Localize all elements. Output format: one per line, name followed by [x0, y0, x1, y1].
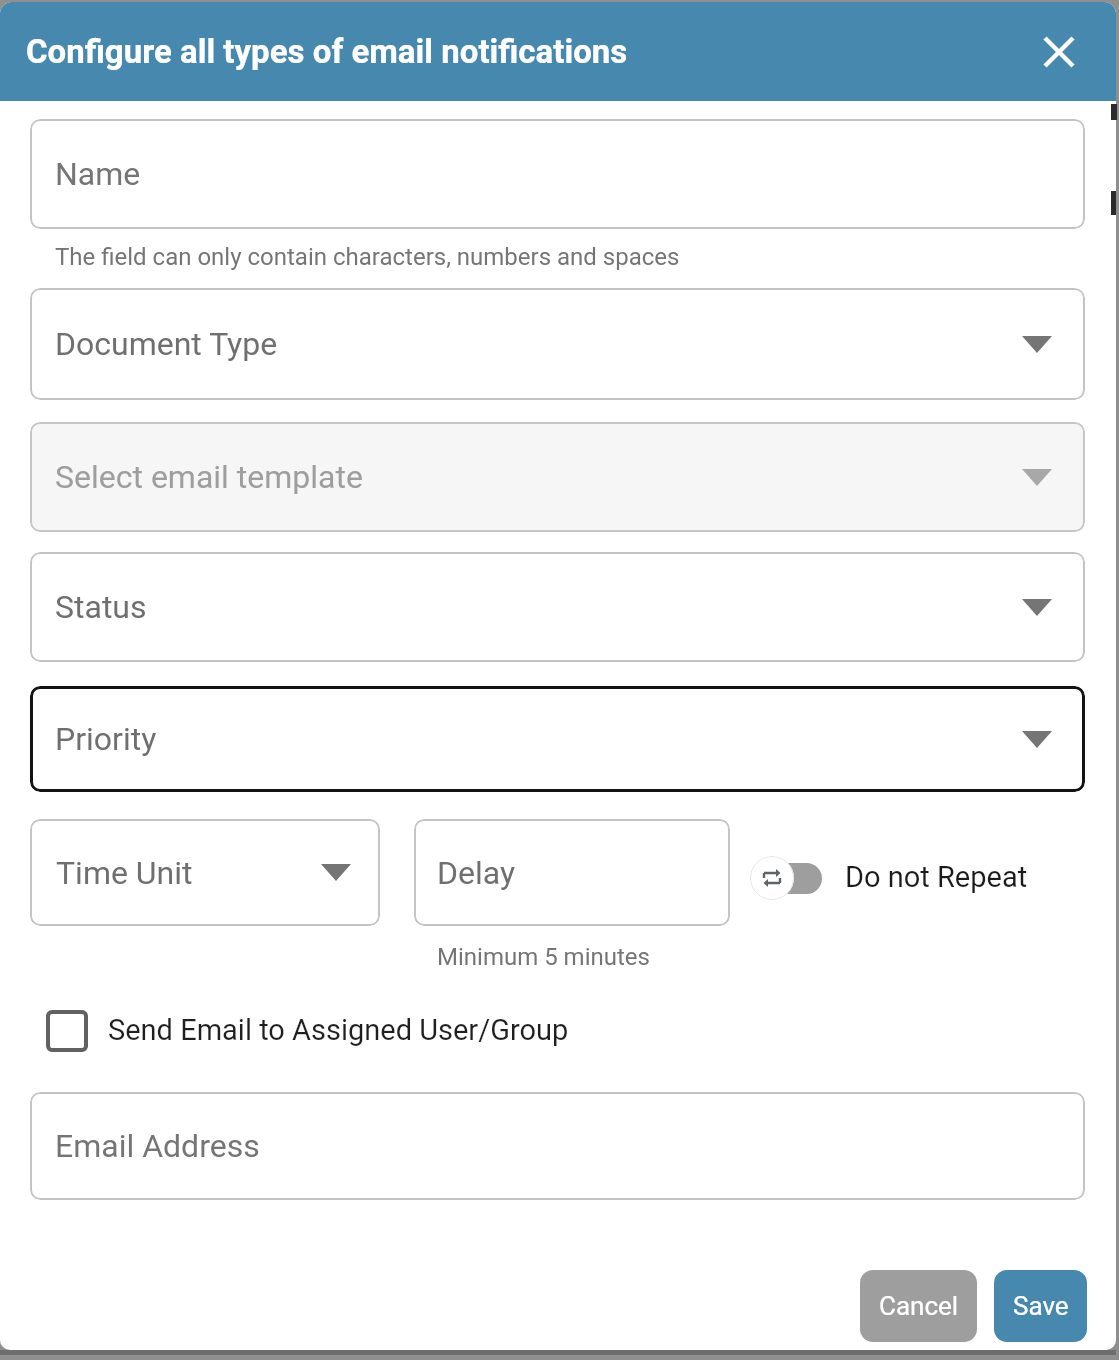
button[interactable]: Status [30, 552, 1085, 662]
staticText: Status [55, 588, 147, 626]
button[interactable]: Time Unit [30, 819, 380, 926]
staticText: Send Email to Assigned User/Group [108, 1013, 569, 1047]
staticText: Do not Repeat [845, 860, 1028, 894]
button[interactable]: Priority [30, 686, 1085, 792]
staticText: Save [1013, 1291, 1069, 1321]
button[interactable]: Cancel [860, 1270, 977, 1342]
button[interactable]: Select email template [30, 422, 1085, 532]
staticText: Document Type [55, 325, 278, 363]
button[interactable]: Save [994, 1270, 1087, 1342]
staticText: Cancel [879, 1291, 959, 1321]
staticText: Select email template [55, 458, 363, 496]
staticText: The field can only contain characters, n… [55, 243, 680, 271]
button[interactable]: Delay [414, 819, 730, 926]
button[interactable]: Name [30, 119, 1085, 229]
staticText: Time Unit [56, 854, 193, 892]
staticText: Delay [437, 854, 516, 892]
staticText: Configure all types of email notificatio… [26, 32, 628, 71]
button[interactable] [751, 863, 822, 894]
button[interactable]: Email Address [30, 1092, 1085, 1200]
staticText: Minimum 5 minutes [437, 943, 650, 971]
staticText: Email Address [55, 1127, 260, 1165]
staticText: Name [55, 155, 141, 193]
button[interactable] [46, 1010, 88, 1052]
button[interactable] [1039, 32, 1079, 72]
button[interactable]: Document Type [30, 288, 1085, 400]
staticText: Priority [55, 720, 157, 758]
